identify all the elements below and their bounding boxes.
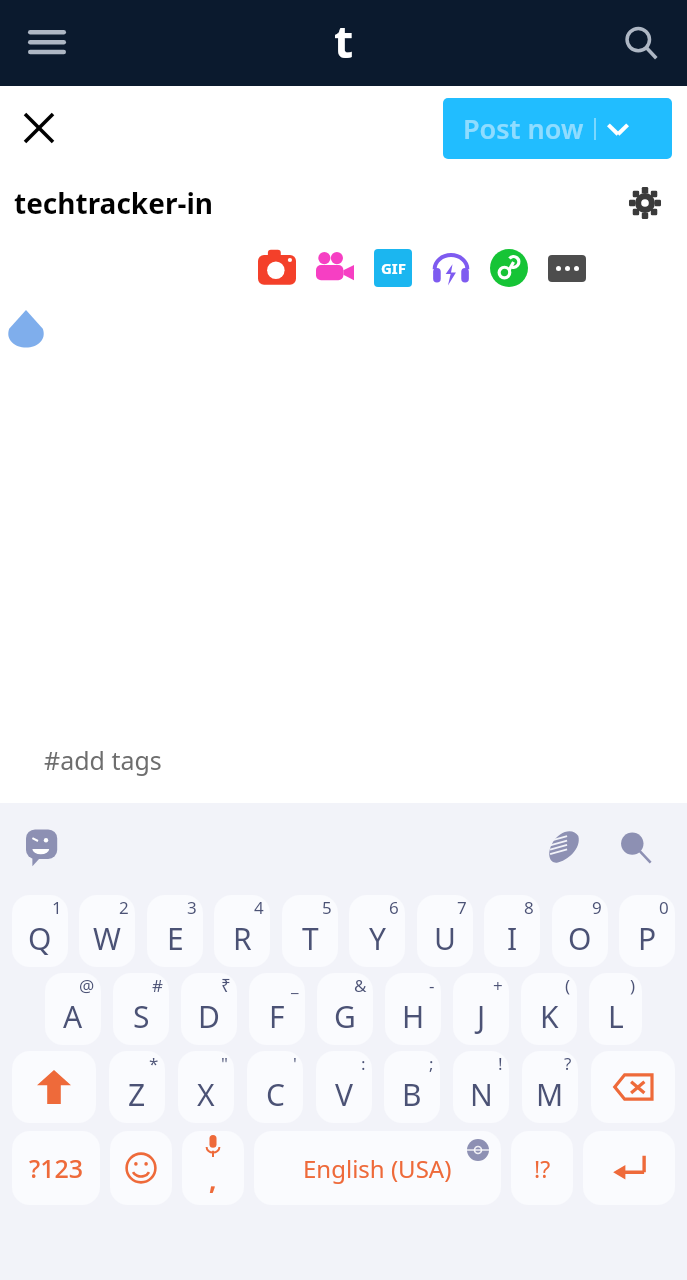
staticText: GIF: [381, 258, 406, 278]
button[interactable]: !: [453, 1051, 509, 1123]
button[interactable]: ₹: [181, 973, 237, 1045]
staticText: Q: [28, 918, 52, 959]
staticText: G: [334, 996, 356, 1037]
button[interactable]: 7: [417, 895, 473, 967]
staticText: ,: [209, 1162, 217, 1197]
button[interactable]: 5: [282, 895, 338, 967]
button[interactable]: 8: [484, 895, 540, 967]
staticText: A: [63, 996, 83, 1037]
button[interactable]: More: [546, 247, 588, 289]
button[interactable]: 4: [214, 895, 270, 967]
staticText: !?: [534, 1153, 551, 1184]
staticText: S: [133, 996, 150, 1037]
button[interactable]: Comma and voice: [182, 1131, 244, 1205]
staticText: B: [402, 1074, 422, 1115]
button[interactable]: Menu: [18, 14, 76, 72]
staticText: ": [221, 1052, 228, 1075]
button[interactable]: Enter: [583, 1131, 675, 1205]
button[interactable]: (: [521, 973, 577, 1045]
staticText: Y: [369, 918, 386, 959]
button[interactable]: ?: [522, 1051, 578, 1123]
button[interactable]: &: [317, 973, 373, 1045]
button[interactable]: Emoji keyboard: [110, 1131, 172, 1205]
staticText: (: [565, 974, 571, 997]
staticText: ;: [429, 1052, 434, 1075]
staticText: H: [402, 996, 425, 1037]
button[interactable]: Audio: [430, 247, 472, 289]
button[interactable]: Post now: [443, 98, 672, 159]
button[interactable]: Shift: [12, 1051, 96, 1123]
staticText: 1: [52, 896, 62, 919]
staticText: L: [608, 996, 624, 1037]
staticText: :: [361, 1052, 366, 1075]
staticText: N: [470, 1074, 493, 1115]
staticText: U: [434, 918, 456, 959]
button[interactable]: #: [113, 973, 169, 1045]
button[interactable]: @: [45, 973, 101, 1045]
staticText: X: [197, 1074, 215, 1115]
button[interactable]: Link: [488, 247, 530, 289]
staticText: _: [291, 974, 299, 997]
button[interactable]: Close: [10, 99, 68, 157]
staticText: English (USA): [303, 1152, 452, 1185]
button[interactable]: -: [385, 973, 441, 1045]
staticText: Z: [128, 1074, 146, 1115]
button[interactable]: ): [589, 973, 642, 1045]
staticText: -: [429, 974, 435, 997]
staticText: F: [269, 996, 285, 1037]
button[interactable]: 1: [12, 895, 68, 967]
button[interactable]: Post settings: [619, 177, 671, 229]
button[interactable]: ": [178, 1051, 234, 1123]
button[interactable]: +: [453, 973, 509, 1045]
staticText: C: [266, 1074, 285, 1115]
staticText: M: [536, 1074, 564, 1115]
button[interactable]: 2: [79, 895, 135, 967]
button[interactable]: ': [247, 1051, 303, 1123]
staticText: #: [152, 974, 163, 997]
staticText: R: [233, 918, 252, 959]
staticText: E: [167, 918, 184, 959]
staticText: W: [93, 918, 121, 959]
button[interactable]: 6: [349, 895, 405, 967]
staticText: !: [498, 1052, 503, 1075]
staticText: 7: [457, 896, 467, 919]
button[interactable]: Search: [613, 825, 657, 869]
button[interactable]: Video: [314, 247, 356, 289]
staticText: #add tags: [44, 743, 162, 777]
button[interactable]: ?123: [12, 1131, 100, 1205]
button[interactable]: ;: [384, 1051, 440, 1123]
staticText: 5: [322, 896, 332, 919]
button[interactable]: Voice input: [541, 825, 585, 869]
button[interactable]: _: [249, 973, 305, 1045]
staticText: 6: [389, 896, 399, 919]
staticText: O: [568, 918, 592, 959]
staticText: 4: [254, 896, 264, 919]
staticText: *: [149, 1052, 159, 1075]
button[interactable]: Symbols: [511, 1131, 573, 1205]
staticText: P: [638, 918, 657, 959]
button[interactable]: Space: [254, 1131, 501, 1205]
button[interactable]: *: [109, 1051, 165, 1123]
staticText: Post now: [463, 110, 584, 147]
staticText: @: [79, 974, 95, 997]
staticText: &: [354, 974, 367, 997]
button[interactable]: 3: [147, 895, 203, 967]
button[interactable]: Search: [613, 15, 669, 71]
staticText: ?: [564, 1052, 572, 1075]
staticText: 9: [592, 896, 602, 919]
staticText: ₹: [221, 974, 231, 997]
staticText: ): [630, 974, 636, 997]
button[interactable]: Photo: [256, 247, 298, 289]
button[interactable]: 9: [552, 895, 608, 967]
staticText: V: [335, 1074, 353, 1115]
staticText: 8: [524, 896, 534, 919]
staticText: 0: [659, 896, 669, 919]
button[interactable]: Emoji: [18, 823, 66, 871]
staticText: ?123: [29, 1151, 84, 1185]
staticText: t: [334, 11, 354, 71]
button[interactable]: Backspace: [591, 1051, 675, 1123]
button[interactable]: :: [316, 1051, 372, 1123]
button[interactable]: 0: [619, 895, 675, 967]
button[interactable]: GIF: [372, 247, 414, 289]
staticText: techtracker-in: [14, 184, 213, 222]
